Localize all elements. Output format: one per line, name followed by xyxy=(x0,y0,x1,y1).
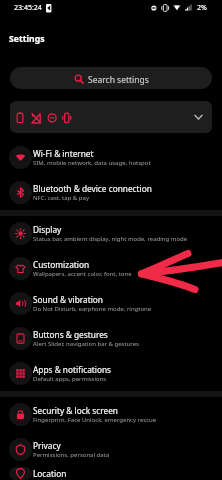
staticText: Wallpapers, accent color, font, tone xyxy=(33,270,132,278)
staticText: Customization xyxy=(33,259,90,270)
staticText: Default apps, permissions xyxy=(33,375,107,383)
button[interactable]: Buttons & gestures xyxy=(0,321,222,356)
staticText: Alert Slider, navigation bar & gestures xyxy=(33,340,139,348)
staticText: Sound & vibration xyxy=(33,294,103,305)
button[interactable]: Security & lock screen xyxy=(0,397,222,432)
staticText: Privacy xyxy=(33,440,61,451)
button[interactable]: Bluetooth & device connection xyxy=(0,175,222,210)
button[interactable] xyxy=(10,101,212,133)
button[interactable]: Apps & notifications xyxy=(0,356,222,391)
button[interactable]: Customization xyxy=(0,251,222,286)
staticText: SIM, mobile network, data usage, hotspot xyxy=(33,159,151,167)
button[interactable]: Sound & vibration xyxy=(0,286,222,321)
staticText: Status bar, ambient display, night mode,… xyxy=(33,235,188,243)
staticText: Do Not Disturb, earphone mode, ringtone xyxy=(33,305,152,313)
staticText: Apps & notifications xyxy=(33,364,112,375)
staticText: Settings xyxy=(9,33,45,45)
staticText: Buttons & gestures xyxy=(33,329,108,340)
staticText: NFC, cast, tap & pay xyxy=(33,194,89,202)
staticText: Permissions, personal data xyxy=(33,451,110,459)
staticText: Search settings xyxy=(88,74,149,86)
staticText: Display xyxy=(33,224,62,235)
staticText: Fingerprint, Face Unlock, emergency resc… xyxy=(33,416,157,424)
button[interactable]: Display xyxy=(0,216,222,251)
staticText: Security & lock screen xyxy=(33,405,118,416)
staticText: 2% xyxy=(197,3,207,13)
button[interactable]: Privacy xyxy=(0,432,222,467)
button[interactable]: Search settings xyxy=(10,67,212,89)
staticText: Wi-Fi & internet xyxy=(33,148,94,159)
staticText: 23:45:24 xyxy=(14,3,42,13)
button[interactable]: Wi-Fi & internet xyxy=(0,140,222,175)
button[interactable]: Location xyxy=(0,467,222,480)
staticText: Location xyxy=(33,468,67,479)
staticText: Bluetooth & device connection xyxy=(33,183,152,194)
